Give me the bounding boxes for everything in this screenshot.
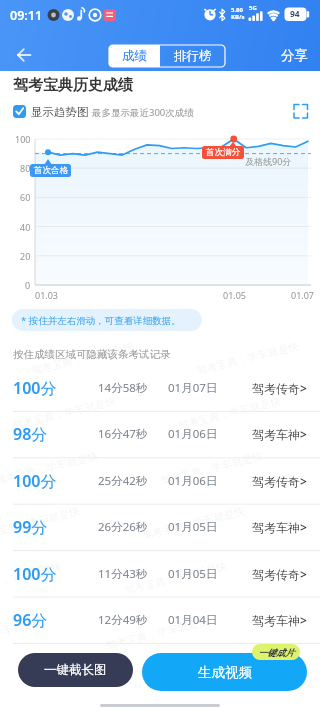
staticText: 40 — [20, 221, 31, 233]
staticText: 一键成片 — [258, 647, 294, 658]
staticText: 01月05日 — [168, 566, 218, 582]
staticText: 驾考宝典，学车就是快 — [141, 504, 246, 542]
staticText: 驾考车神> — [252, 612, 307, 628]
staticText: 01月06日 — [168, 473, 218, 489]
staticText: 01.07 — [291, 289, 315, 301]
staticText: 最多显示最近300次成绩 — [92, 106, 194, 119]
button[interactable]: 99分 — [0, 504, 320, 550]
staticText: 及格线90分 — [245, 155, 292, 167]
staticText: 驾考传奇> — [252, 380, 307, 396]
staticText: 60 — [20, 191, 31, 203]
button[interactable] — [13, 103, 213, 120]
button[interactable]: 100分 — [0, 458, 320, 504]
staticText: 驾考宝典，学车就是快 — [12, 394, 117, 432]
staticText: 25分42秒 — [98, 473, 148, 489]
staticText: 5G — [249, 4, 257, 12]
staticText: 01.05 — [223, 289, 247, 301]
staticText: 驾考传奇> — [252, 473, 307, 489]
staticText: 5.80 — [231, 6, 243, 14]
staticText: 分享 — [281, 47, 308, 64]
button[interactable]: 100分 — [0, 365, 320, 411]
button[interactable] — [291, 102, 311, 121]
staticText: KB/s — [231, 13, 245, 21]
button[interactable]: 96分 — [0, 597, 320, 643]
button[interactable]: 一键截长图 — [18, 653, 133, 687]
staticText: 驾考宝典，学车就是快 — [177, 394, 282, 432]
staticText: 驾考宝典历史成绩 — [13, 76, 133, 95]
staticText: 驾考传奇> — [252, 566, 307, 582]
staticText: 排行榜 — [174, 48, 212, 64]
staticText: 驾考宝典，学车就是快 — [105, 614, 210, 652]
staticText: 驾考宝典，学车就是快 — [0, 559, 63, 597]
staticText: 100 — [15, 133, 31, 145]
staticText: 01月04日 — [168, 612, 218, 628]
staticText: 驾考车神> — [252, 519, 307, 535]
staticText: 驾考车神> — [252, 426, 307, 442]
staticText: 首次合格 — [34, 165, 68, 176]
button[interactable]: 98分 — [0, 411, 320, 457]
staticText: 96分 — [13, 609, 48, 631]
staticText: 生成视频 — [198, 664, 252, 681]
staticText: 01.03 — [35, 289, 59, 301]
staticText: 100分 — [13, 563, 57, 585]
button[interactable] — [6, 42, 42, 68]
staticText: 20 — [20, 250, 31, 262]
staticText: 99分 — [13, 516, 48, 538]
staticText: 一键截长图 — [44, 662, 107, 678]
staticText: 01月07日 — [168, 380, 218, 396]
staticText: 驾考宝典，学车就是快 — [0, 449, 99, 487]
staticText: 14分58秒 — [98, 380, 148, 396]
button[interactable]: 100分 — [0, 551, 320, 597]
staticText: 按住成绩区域可隐藏该条考试记录 — [13, 348, 171, 361]
staticText: 12分49秒 — [98, 612, 148, 628]
staticText: 11分43秒 — [98, 566, 148, 582]
staticText: 16分47秒 — [98, 426, 148, 442]
staticText: 驾考宝典，学车就是快 — [123, 559, 228, 597]
staticText: 驾考宝典，学车就是快 — [30, 339, 135, 377]
button[interactable]: 排行榜 — [160, 45, 225, 67]
staticText: * 按住并左右滑动，可查看详细数据。 — [21, 314, 181, 327]
staticText: 80 — [20, 162, 31, 174]
staticText: 09:11 — [10, 7, 43, 24]
staticText: 01月06日 — [168, 426, 218, 442]
staticText: 100分 — [13, 470, 57, 492]
staticText: 98分 — [13, 423, 48, 445]
staticText: 01月05日 — [168, 519, 218, 535]
staticText: 94 — [290, 8, 300, 20]
staticText: 成绩 — [122, 48, 147, 64]
button[interactable]: 分享 — [272, 43, 316, 67]
button[interactable]: 生成视频 — [142, 653, 307, 691]
staticText: 驾考宝典，学车就是快 — [0, 614, 45, 652]
staticText: 26分26秒 — [98, 519, 148, 535]
staticText: 显示趋势图 — [31, 105, 89, 119]
staticText: 100分 — [13, 377, 57, 399]
staticText: 首次满分 — [206, 147, 240, 158]
staticText: 驾考宝典，学车就是快 — [159, 449, 264, 487]
staticText: 驾考宝典，学车就是快 — [0, 504, 81, 542]
staticText: 0 — [25, 279, 31, 291]
button[interactable]: 成绩 — [109, 45, 160, 67]
